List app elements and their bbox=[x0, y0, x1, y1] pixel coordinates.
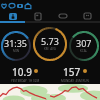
button[interactable]: Favorites bbox=[0, 0, 8, 11]
button[interactable]: Activity bbox=[0, 11, 25, 21]
button[interactable]: 157 bbox=[50, 65, 100, 100]
button[interactable]: Profile bbox=[75, 11, 100, 21]
staticText: KCAL bbox=[80, 49, 88, 53]
staticText: KM AVG bbox=[44, 47, 56, 51]
staticText: 31:35 bbox=[4, 37, 28, 49]
button[interactable]: Photos bbox=[16, 0, 24, 11]
button[interactable]: Sleep bbox=[50, 11, 75, 21]
button[interactable]: 5.73 bbox=[33, 27, 67, 61]
button[interactable]: Messages bbox=[8, 0, 16, 11]
staticText: YESTERDAY 1H 02M bbox=[11, 79, 40, 83]
button[interactable]: 307 bbox=[69, 31, 99, 61]
staticText: MIN bbox=[13, 49, 20, 53]
staticText: MONDAY 45M RUN bbox=[61, 79, 89, 83]
button[interactable]: Home bbox=[24, 0, 32, 11]
staticText: 307 bbox=[76, 37, 92, 49]
staticText: 157 bbox=[63, 65, 81, 77]
staticText: 5.73 bbox=[41, 35, 59, 47]
staticText: 10.9 bbox=[12, 65, 32, 77]
button[interactable]: Workouts bbox=[25, 11, 50, 21]
button[interactable]: 10.9 bbox=[0, 65, 50, 100]
button[interactable]: 31:35 bbox=[1, 31, 31, 61]
